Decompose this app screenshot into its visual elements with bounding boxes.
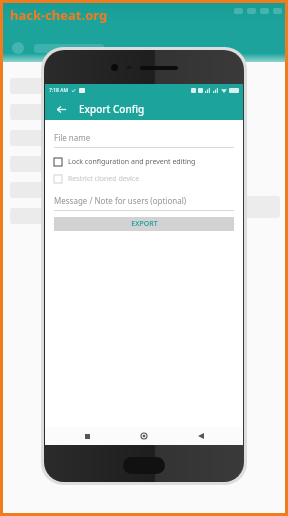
button[interactable]: Restrict cloned device — [54, 174, 234, 184]
staticText: Lock configuration and prevent editing — [68, 157, 196, 167]
staticText: 7:18 AM — [49, 87, 68, 94]
staticText: File name — [54, 132, 91, 143]
button[interactable]: File name — [54, 132, 234, 148]
button[interactable]: Home — [129, 427, 159, 445]
staticText: Message / Note for users (optional) — [54, 195, 187, 206]
button[interactable]: Back — [53, 101, 69, 117]
staticText: EXPORT — [131, 219, 158, 229]
button[interactable]: Back — [186, 427, 216, 445]
staticText: hack-cheat.org — [10, 6, 108, 24]
button[interactable]: Message / Note for users (optional) — [54, 195, 234, 211]
button[interactable]: Lock configuration and prevent editing — [54, 157, 234, 167]
staticText: Export Config — [79, 102, 145, 116]
button[interactable]: Recent apps — [72, 427, 102, 445]
staticText: Restrict cloned device — [68, 174, 140, 184]
button[interactable]: EXPORT — [54, 217, 234, 231]
